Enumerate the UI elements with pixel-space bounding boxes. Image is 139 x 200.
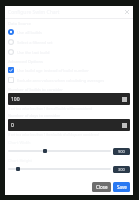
button[interactable]: Use build age instead of build number xyxy=(8,65,130,75)
staticText: 0 xyxy=(11,122,14,129)
staticText: Use the last build xyxy=(17,50,50,55)
button[interactable]: 300 xyxy=(8,165,130,173)
button[interactable]: Close xyxy=(123,8,131,16)
button[interactable]: Use all builds xyxy=(8,27,130,37)
button[interactable]: Save xyxy=(113,182,130,192)
staticText: Close xyxy=(96,184,108,190)
staticText: Use all builds xyxy=(17,30,42,35)
button[interactable]: Select a filtered set xyxy=(8,37,130,47)
staticText: Exclude zero values when calculating ave… xyxy=(17,78,105,83)
staticText: If set to a value less than 1 then all b… xyxy=(8,107,93,111)
staticText: If set to a value less than 1 then build… xyxy=(8,133,99,137)
staticText: Advanced Options xyxy=(8,59,43,64)
staticText: 300 xyxy=(118,167,125,172)
staticText: Number of builds to consider xyxy=(8,87,63,92)
button[interactable]: Close xyxy=(92,182,111,192)
button[interactable]: 0 xyxy=(8,119,130,131)
button[interactable]: 900 xyxy=(8,147,130,155)
staticText: Data Source xyxy=(8,21,32,26)
staticText: 100 xyxy=(11,96,20,103)
button[interactable]: Use the last build xyxy=(8,47,130,57)
button[interactable]: 100 xyxy=(8,93,130,105)
staticText: Configure Swim Chart xyxy=(8,9,60,16)
staticText: Number of days to consider xyxy=(8,113,61,118)
button[interactable]: Exclude zero values when calculating ave… xyxy=(8,75,130,85)
staticText: Use build age instead of build number xyxy=(17,68,89,73)
staticText: 900 xyxy=(118,149,125,154)
staticText: Save xyxy=(117,184,127,190)
staticText: Select a filtered set xyxy=(17,40,53,45)
